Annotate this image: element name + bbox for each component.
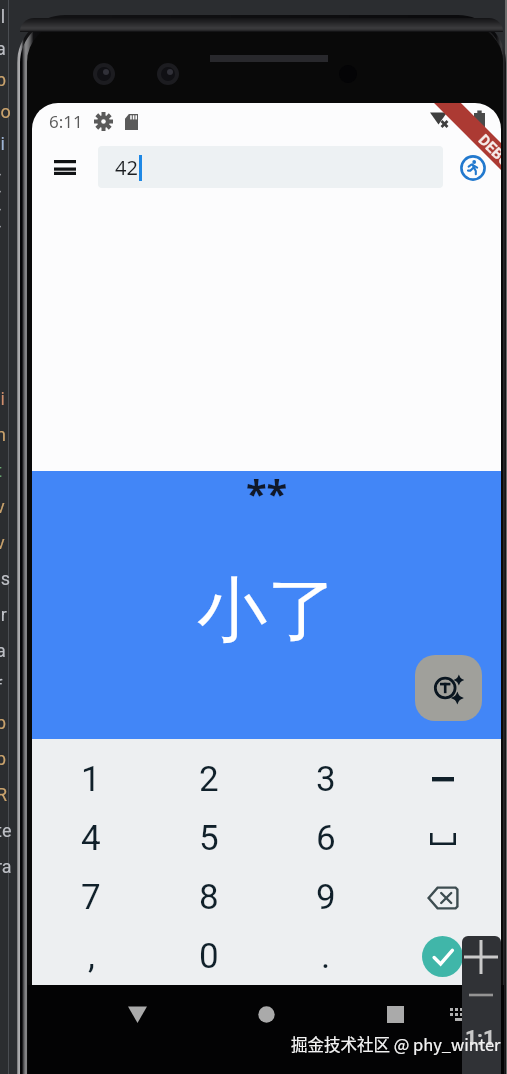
staticText: 4 xyxy=(81,818,101,859)
staticText: R xyxy=(0,784,8,805)
other: Confirm xyxy=(422,936,463,977)
staticText: t xyxy=(0,460,2,481)
button[interactable]: Zoom out xyxy=(462,980,501,1016)
button[interactable]: 0 xyxy=(150,927,267,985)
staticText: 1 xyxy=(81,759,101,800)
button[interactable]: Switch keyboard xyxy=(440,996,474,1030)
button[interactable]: . xyxy=(267,927,384,985)
button[interactable]: 9 xyxy=(267,868,384,927)
button[interactable]: Zoom in xyxy=(462,936,501,980)
button[interactable]: Run xyxy=(452,147,493,188)
staticText: 6 xyxy=(316,818,336,859)
staticText: DEBUG xyxy=(475,131,501,178)
button[interactable]: 5 xyxy=(150,809,267,868)
button[interactable]: 3 xyxy=(267,750,384,809)
staticText: 8 xyxy=(199,877,219,918)
staticText: 小了 xyxy=(197,567,337,655)
staticText: 6:11 xyxy=(49,110,83,133)
staticText: li xyxy=(0,388,5,409)
staticText: ra xyxy=(0,856,12,877)
staticText: .s xyxy=(0,568,11,589)
staticText: 7 xyxy=(81,877,101,918)
button[interactable]: Smart text xyxy=(415,655,482,721)
button[interactable] xyxy=(384,809,501,868)
staticText: ** xyxy=(246,467,288,519)
staticText: 1:1 xyxy=(465,1026,496,1051)
staticText: 0 xyxy=(199,936,219,977)
staticText: [ xyxy=(0,172,1,193)
staticText: 3 xyxy=(316,759,336,800)
button[interactable]: 2 xyxy=(150,750,267,809)
staticText: . xyxy=(321,936,331,977)
button[interactable]: Back xyxy=(114,991,161,1038)
staticText: 9 xyxy=(316,877,336,918)
staticText: n xyxy=(0,424,6,445)
staticText: io xyxy=(0,101,11,122)
button[interactable]: , xyxy=(32,927,150,985)
staticText: f xyxy=(0,676,3,697)
button[interactable]: Home xyxy=(243,991,290,1038)
button[interactable] xyxy=(384,868,501,927)
staticText: [ xyxy=(0,207,1,228)
staticText: p xyxy=(0,712,7,733)
staticText: a xyxy=(0,640,6,661)
button[interactable]: Confirm xyxy=(384,927,501,985)
staticText: .l xyxy=(0,6,6,27)
button[interactable]: 4 xyxy=(32,809,150,868)
staticText: 2 xyxy=(199,759,219,800)
staticText: .r xyxy=(0,604,7,625)
button[interactable]: 1 xyxy=(32,750,150,809)
button[interactable]: 7 xyxy=(32,868,150,927)
staticText: , xyxy=(88,936,95,977)
button[interactable]: Recents xyxy=(372,991,419,1038)
staticText: p xyxy=(0,748,7,769)
button[interactable]: Menu xyxy=(41,143,89,191)
button[interactable]: 8 xyxy=(150,868,267,927)
button[interactable] xyxy=(384,750,501,809)
staticText: 42 xyxy=(115,154,138,181)
staticText: v xyxy=(0,532,5,553)
button[interactable]: 6 xyxy=(267,809,384,868)
staticText: te xyxy=(0,820,12,841)
staticText: 5 xyxy=(199,818,219,859)
staticText: b xyxy=(0,69,7,90)
staticText: 掘金技术社区 @ phy_winter xyxy=(291,1032,501,1056)
staticText: a xyxy=(0,38,6,59)
button[interactable]: Actual size xyxy=(462,1022,501,1052)
button[interactable]: 42 xyxy=(98,146,443,188)
staticText: v xyxy=(0,496,5,517)
staticText: li xyxy=(0,133,5,154)
